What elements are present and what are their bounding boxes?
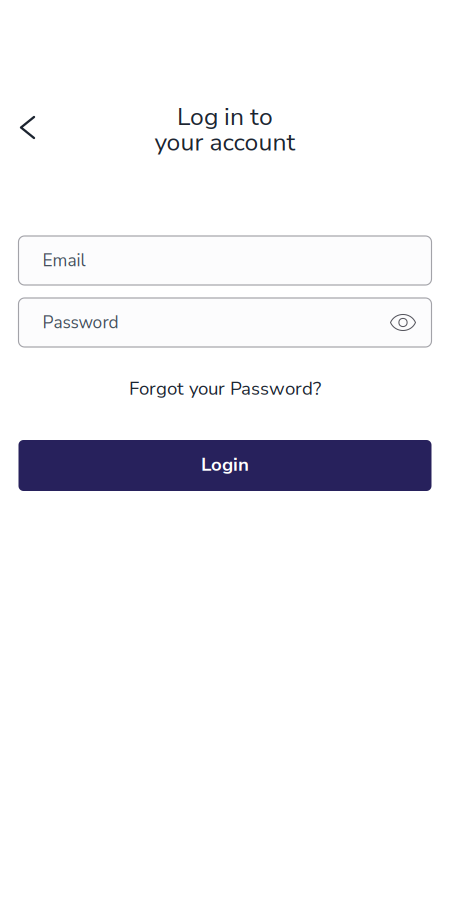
staticText: Email [42,249,85,272]
staticText: your account [154,126,295,159]
button[interactable]: Forgot your Password? [123,376,327,401]
button[interactable]: Show password [385,310,420,335]
button[interactable]: Email [18,236,431,285]
button[interactable]: Login [18,440,431,491]
staticText: Password [42,311,118,334]
button[interactable]: Back [12,105,49,150]
button[interactable]: Password [18,298,431,347]
staticText: Forgot your Password? [129,376,321,401]
staticText: Login [201,452,249,477]
staticText: Log in to [177,100,273,134]
